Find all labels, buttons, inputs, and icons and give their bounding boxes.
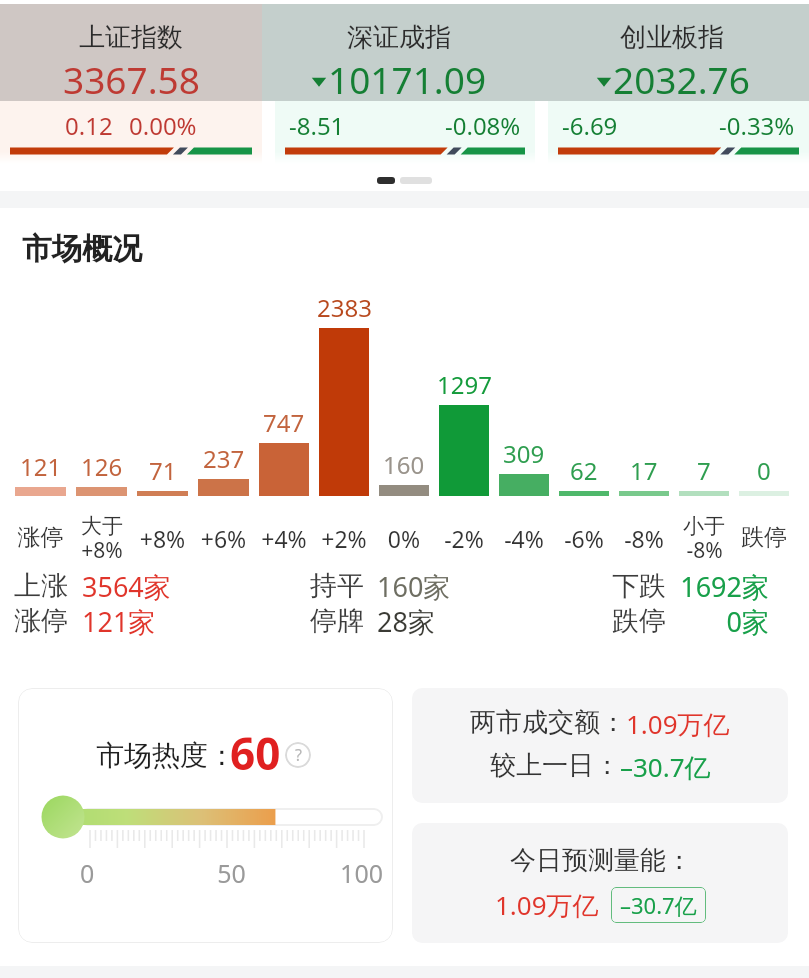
staticText: 涨停 xyxy=(14,604,68,638)
staticText: 1692家 xyxy=(666,568,769,603)
staticText: 两市成交额： xyxy=(470,706,626,739)
staticText: -8.51 xyxy=(289,109,345,142)
staticText: 60 xyxy=(230,723,281,783)
staticText: 10171.09 xyxy=(328,54,487,101)
staticText: -6% xyxy=(554,523,614,554)
staticText: 0% xyxy=(374,523,434,554)
staticText: 下跌 xyxy=(612,569,666,603)
staticText: 747 xyxy=(263,406,305,439)
staticText: 28家 xyxy=(377,603,435,638)
staticText: 0家 xyxy=(666,603,769,638)
staticText: 小于 xyxy=(683,513,725,539)
button[interactable]: Page 2 xyxy=(400,177,432,184)
staticText: -8% xyxy=(686,536,723,565)
staticText: 深证成指 xyxy=(347,21,451,54)
staticText: ? xyxy=(295,744,302,766)
staticText: 3367.58 xyxy=(63,54,200,101)
staticText: 50 xyxy=(181,856,282,890)
staticText: +6% xyxy=(193,523,254,554)
staticText: 0 xyxy=(757,454,771,487)
staticText: 160家 xyxy=(377,568,451,603)
button[interactable]: Page 1 xyxy=(377,177,395,184)
staticText: +8% xyxy=(132,523,193,554)
staticText: +4% xyxy=(254,523,314,554)
staticText: 7 xyxy=(697,454,711,487)
staticText: 跌停 xyxy=(734,523,794,552)
staticText: 121 xyxy=(20,450,62,483)
staticText: -4% xyxy=(494,523,554,554)
staticText: 较上一日： xyxy=(490,749,620,782)
staticText: 2383 xyxy=(317,291,372,324)
staticText: 市场概况 xyxy=(22,230,142,268)
staticText: 309 xyxy=(503,437,545,470)
staticText: 市场热度： xyxy=(96,738,236,773)
staticText: 持平 xyxy=(310,569,364,603)
button[interactable]: 创业板指 xyxy=(535,4,809,164)
staticText: 121家 xyxy=(82,603,156,638)
button[interactable]: 深证成指 xyxy=(262,4,535,164)
staticText: -0.33% xyxy=(719,109,795,142)
button[interactable]: 市场热度： xyxy=(18,688,393,943)
staticText: -2% xyxy=(434,523,494,554)
staticText: –30.7亿 xyxy=(620,749,711,785)
staticText: 0.12 xyxy=(65,109,113,142)
staticText: 0 xyxy=(80,856,181,890)
staticText: 237 xyxy=(203,442,245,475)
staticText: -0.08% xyxy=(445,109,521,142)
button[interactable]: 两市成交额： xyxy=(412,688,788,803)
staticText: 大于 xyxy=(81,513,123,539)
staticText: +8% xyxy=(81,536,123,565)
staticText: –30.7亿 xyxy=(620,890,697,920)
staticText: 100 xyxy=(282,856,383,890)
staticText: 62 xyxy=(570,454,598,487)
staticText: 1.09万亿 xyxy=(495,887,599,923)
staticText: 160 xyxy=(383,448,425,481)
staticText: 126 xyxy=(81,450,123,483)
button[interactable]: 上证指数 xyxy=(0,4,262,164)
staticText: 17 xyxy=(630,454,658,487)
staticText: -6.69 xyxy=(562,109,618,142)
staticText: 1.09万亿 xyxy=(626,706,730,742)
other: Help xyxy=(285,742,311,768)
staticText: -8% xyxy=(614,523,674,554)
staticText: 创业板指 xyxy=(620,21,724,54)
staticText: 71 xyxy=(149,454,177,487)
staticText: 2032.76 xyxy=(613,54,750,101)
staticText: 涨停 xyxy=(10,523,71,552)
staticText: 上涨 xyxy=(14,569,68,603)
staticText: 上证指数 xyxy=(79,21,183,54)
button[interactable]: 今日预测量能： xyxy=(412,823,788,943)
staticText: 今日预测量能： xyxy=(510,844,692,877)
staticText: 跌停 xyxy=(612,604,666,638)
staticText: +2% xyxy=(314,523,374,554)
staticText: 停牌 xyxy=(310,604,364,638)
staticText: 1297 xyxy=(437,368,492,401)
staticText: 3564家 xyxy=(82,568,171,603)
staticText: 0.00% xyxy=(129,109,197,142)
